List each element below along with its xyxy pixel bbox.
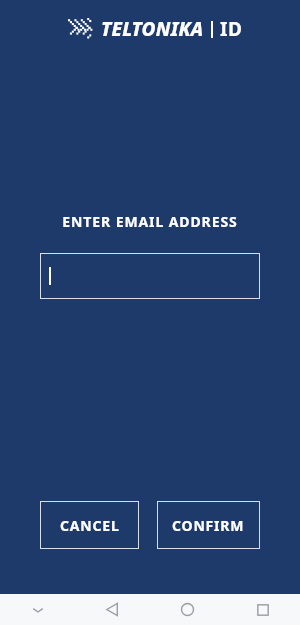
staticText: CANCEL <box>60 516 120 535</box>
button[interactable] <box>40 253 260 299</box>
button[interactable]: CONFIRM <box>157 501 260 549</box>
button[interactable]: Hide keyboard <box>0 594 75 625</box>
button[interactable]: Recents <box>225 594 300 625</box>
button[interactable]: CANCEL <box>40 501 139 549</box>
other: Teltonika ID <box>68 16 243 42</box>
staticText: ENTER EMAIL ADDRESS <box>62 212 238 231</box>
button[interactable]: Back <box>75 594 150 625</box>
staticText: CONFIRM <box>172 516 245 535</box>
button[interactable]: Home <box>150 594 225 625</box>
staticText: ID <box>220 16 243 42</box>
staticText: TELTONIKA <box>101 16 204 42</box>
